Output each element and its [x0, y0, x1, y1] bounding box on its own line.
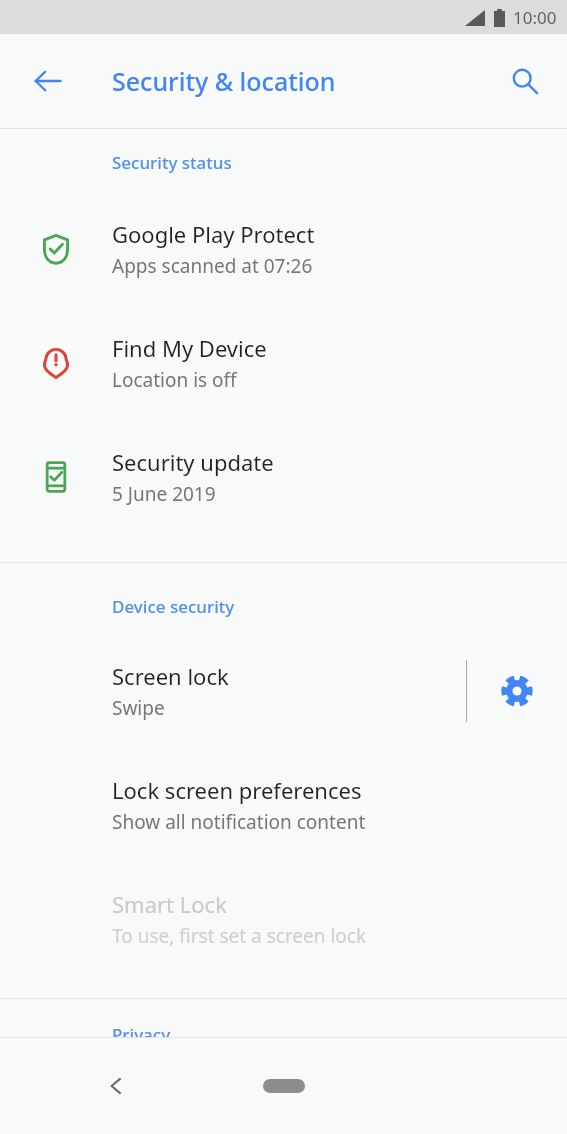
button[interactable]: Back	[18, 51, 78, 111]
button[interactable]: Smart Lock	[0, 862, 567, 976]
staticText: Security update	[112, 447, 274, 477]
staticText: Device security	[112, 595, 235, 618]
staticText: Location is off	[112, 367, 237, 393]
button[interactable]: Screen lock	[0, 634, 466, 748]
staticText: To use, first set a screen lock	[112, 923, 367, 949]
staticText: Security & location	[112, 64, 336, 98]
button[interactable]: Security update	[0, 420, 567, 534]
staticText: Show all notification content	[112, 809, 366, 835]
button[interactable]: Google Play Protect	[0, 192, 567, 306]
button[interactable]: Back	[82, 1052, 150, 1120]
button[interactable]: Find My Device	[0, 306, 567, 420]
staticText: Screen lock	[112, 661, 229, 691]
button[interactable]: Home	[252, 1052, 316, 1120]
staticText: 10:00	[513, 6, 557, 29]
staticText: Apps scanned at 07:26	[112, 253, 313, 279]
staticText: Security status	[112, 151, 232, 174]
button[interactable]: Screen lock settings	[467, 634, 567, 748]
staticText: Lock screen preferences	[112, 775, 362, 805]
staticText: Google Play Protect	[112, 219, 315, 249]
button[interactable]: Search	[495, 51, 555, 111]
button[interactable]: Lock screen preferences	[0, 748, 567, 862]
staticText: Smart Lock	[112, 889, 227, 919]
staticText: Find My Device	[112, 333, 267, 363]
staticText: Swipe	[112, 695, 165, 721]
staticText: Privacy	[112, 1023, 171, 1046]
staticText: 5 June 2019	[112, 481, 216, 507]
